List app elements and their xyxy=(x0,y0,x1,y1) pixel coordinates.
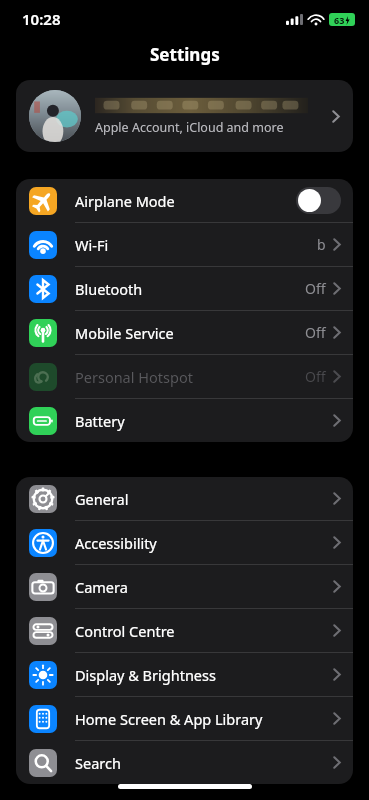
staticText: Mobile Service xyxy=(75,323,305,343)
staticText: General xyxy=(75,489,333,509)
button[interactable]: Personal Hotspot xyxy=(16,355,353,398)
button[interactable]: Mobile Service xyxy=(16,311,353,354)
button[interactable]: Bluetooth xyxy=(16,267,353,310)
staticText: Search xyxy=(75,753,333,773)
staticText: Bluetooth xyxy=(75,279,305,299)
staticText: Camera xyxy=(75,577,333,597)
staticText: Off xyxy=(305,323,326,342)
button[interactable]: Control Centre xyxy=(16,609,353,652)
button[interactable]: General xyxy=(16,477,353,520)
button[interactable]: Camera xyxy=(16,565,353,608)
staticText: Control Centre xyxy=(75,621,333,641)
staticText: Wi-Fi xyxy=(75,235,317,255)
staticText: 63 xyxy=(334,14,345,26)
button[interactable]: Accessibility xyxy=(16,521,353,564)
staticText: Airplane Mode xyxy=(75,191,296,211)
button[interactable]: Apple Account, iCloud and more xyxy=(16,80,353,152)
button[interactable]: Airplane Mode xyxy=(16,179,353,222)
button[interactable]: Home Screen & App Library xyxy=(16,697,353,740)
staticText: Battery xyxy=(75,411,333,431)
staticText: Display & Brightness xyxy=(75,665,333,685)
staticText: Accessibility xyxy=(75,533,333,553)
staticText: Settings xyxy=(150,43,220,66)
staticText: Off xyxy=(305,279,326,298)
staticText: Off xyxy=(305,367,326,386)
button[interactable]: Airplane Mode toggle, off xyxy=(296,187,341,214)
button[interactable]: Battery xyxy=(16,399,353,442)
button[interactable]: Search xyxy=(16,741,353,784)
staticText: Apple Account, iCloud and more xyxy=(95,119,284,136)
staticText: 10:28 xyxy=(22,9,61,29)
staticText: Home Screen & App Library xyxy=(75,709,333,729)
button[interactable]: Display & Brightness xyxy=(16,653,353,696)
button[interactable]: Wi-Fi xyxy=(16,223,353,266)
staticText: b xyxy=(317,235,326,254)
staticText: Personal Hotspot xyxy=(75,367,305,387)
